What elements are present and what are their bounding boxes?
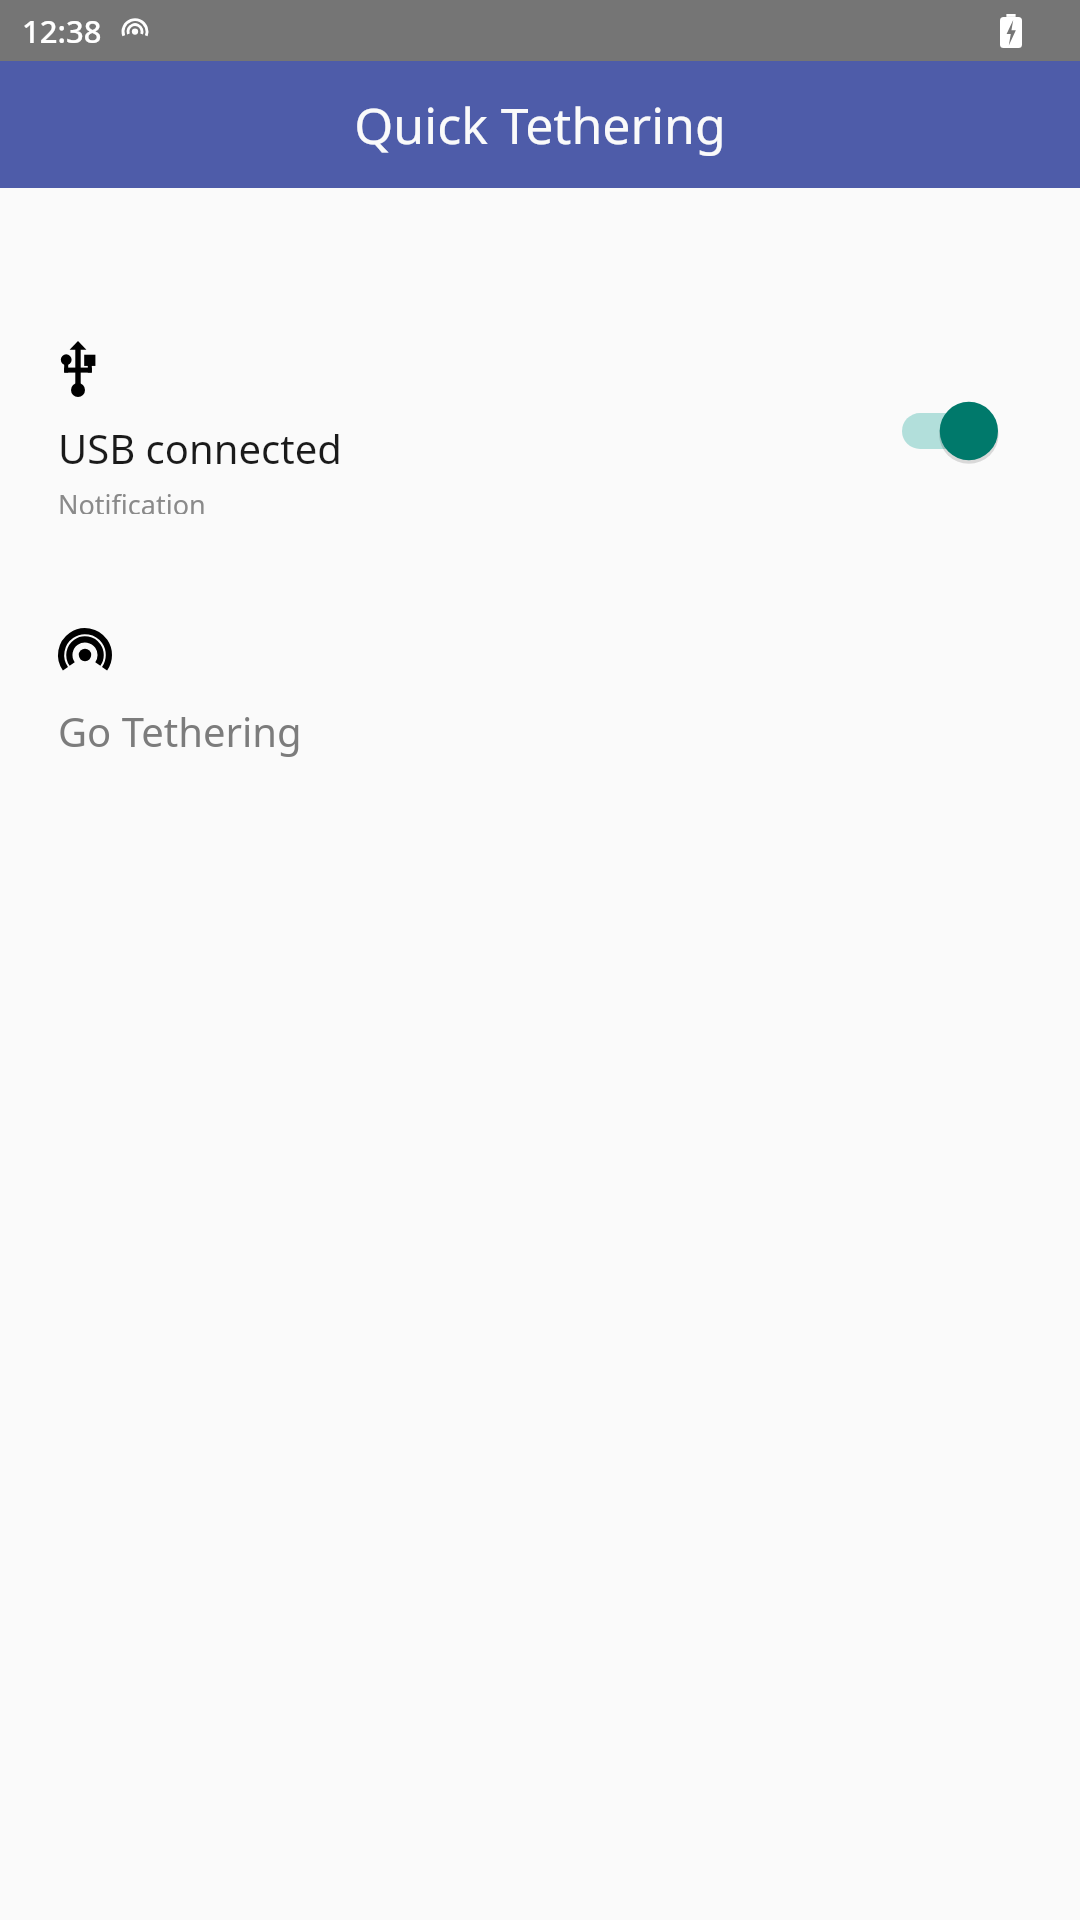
staticText: Go Tethering — [58, 704, 302, 758]
staticText: Notification — [58, 486, 206, 514]
button[interactable]: USB connected — [0, 324, 1080, 514]
button[interactable]: USB tethering toggle — [902, 400, 998, 462]
staticText: Quick Tethering — [0, 91, 1080, 159]
staticText: USB connected — [58, 421, 342, 475]
staticText: 12:38 — [22, 10, 102, 52]
button[interactable]: Go Tethering — [0, 618, 1080, 776]
